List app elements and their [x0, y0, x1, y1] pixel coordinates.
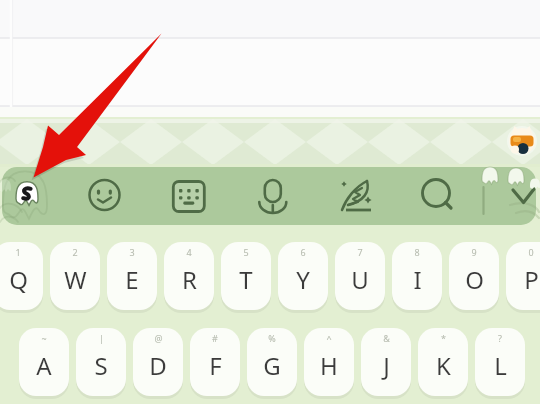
- button[interactable]: 3: [107, 242, 157, 310]
- staticText: 5: [243, 246, 249, 258]
- button[interactable]: AI writing tools: [329, 167, 385, 225]
- staticText: 9: [471, 246, 477, 258]
- staticText: Q: [9, 263, 28, 296]
- staticText: S: [94, 349, 108, 382]
- button[interactable]: 0: [506, 242, 540, 310]
- staticText: W: [64, 263, 87, 296]
- button[interactable]: Voice input: [245, 167, 299, 225]
- button[interactable]: Keyboard layout: [161, 167, 215, 225]
- staticText: R: [182, 263, 197, 296]
- staticText: E: [125, 263, 139, 296]
- button[interactable]: #: [190, 328, 240, 396]
- button[interactable]: 5: [221, 242, 271, 310]
- staticText: #: [212, 332, 218, 344]
- button[interactable]: *: [418, 328, 468, 396]
- button[interactable]: More keyboard options: [489, 167, 532, 225]
- staticText: 0: [528, 246, 534, 258]
- staticText: 7: [357, 246, 363, 258]
- staticText: L: [494, 349, 507, 382]
- staticText: 1: [15, 246, 21, 258]
- staticText: |: [99, 332, 104, 344]
- staticText: H: [320, 349, 338, 382]
- staticText: F: [209, 349, 222, 382]
- button[interactable]: Search: [411, 167, 465, 225]
- button[interactable]: 7: [335, 242, 385, 310]
- button[interactable]: 6: [278, 242, 328, 310]
- button[interactable]: ~: [19, 328, 69, 396]
- button[interactable]: 8: [392, 242, 442, 310]
- staticText: K: [436, 349, 451, 382]
- staticText: 4: [186, 246, 192, 258]
- staticText: @: [154, 332, 163, 344]
- staticText: T: [239, 263, 253, 296]
- staticText: I: [413, 263, 422, 296]
- staticText: A: [36, 349, 52, 382]
- button[interactable]: ^: [304, 328, 354, 396]
- button[interactable]: &: [361, 328, 411, 396]
- staticText: 8: [414, 246, 420, 258]
- staticText: D: [149, 349, 167, 382]
- button[interactable]: ?: [475, 328, 525, 396]
- staticText: J: [383, 349, 390, 382]
- button[interactable]: 9: [449, 242, 499, 310]
- button[interactable]: Sticker suggestion: [501, 124, 537, 160]
- staticText: 6: [300, 246, 306, 258]
- button[interactable]: |: [76, 328, 126, 396]
- staticText: Y: [296, 263, 310, 296]
- staticText: O: [465, 263, 484, 296]
- button[interactable]: Snapchat sticker: [2, 167, 58, 225]
- button[interactable]: @: [133, 328, 183, 396]
- button[interactable]: %: [247, 328, 297, 396]
- staticText: P: [524, 263, 539, 296]
- staticText: 3: [129, 246, 135, 258]
- button[interactable]: 1: [0, 242, 43, 310]
- button[interactable]: Emoji: [78, 167, 132, 225]
- staticText: U: [351, 263, 369, 296]
- staticText: 2: [72, 246, 78, 258]
- staticText: &: [383, 332, 390, 344]
- staticText: G: [263, 349, 281, 382]
- staticText: *: [441, 332, 446, 344]
- staticText: ^: [326, 332, 332, 344]
- staticText: ~: [41, 332, 47, 344]
- staticText: %: [268, 332, 276, 344]
- staticText: ?: [498, 332, 502, 344]
- button[interactable]: 4: [164, 242, 214, 310]
- button[interactable]: 2: [50, 242, 100, 310]
